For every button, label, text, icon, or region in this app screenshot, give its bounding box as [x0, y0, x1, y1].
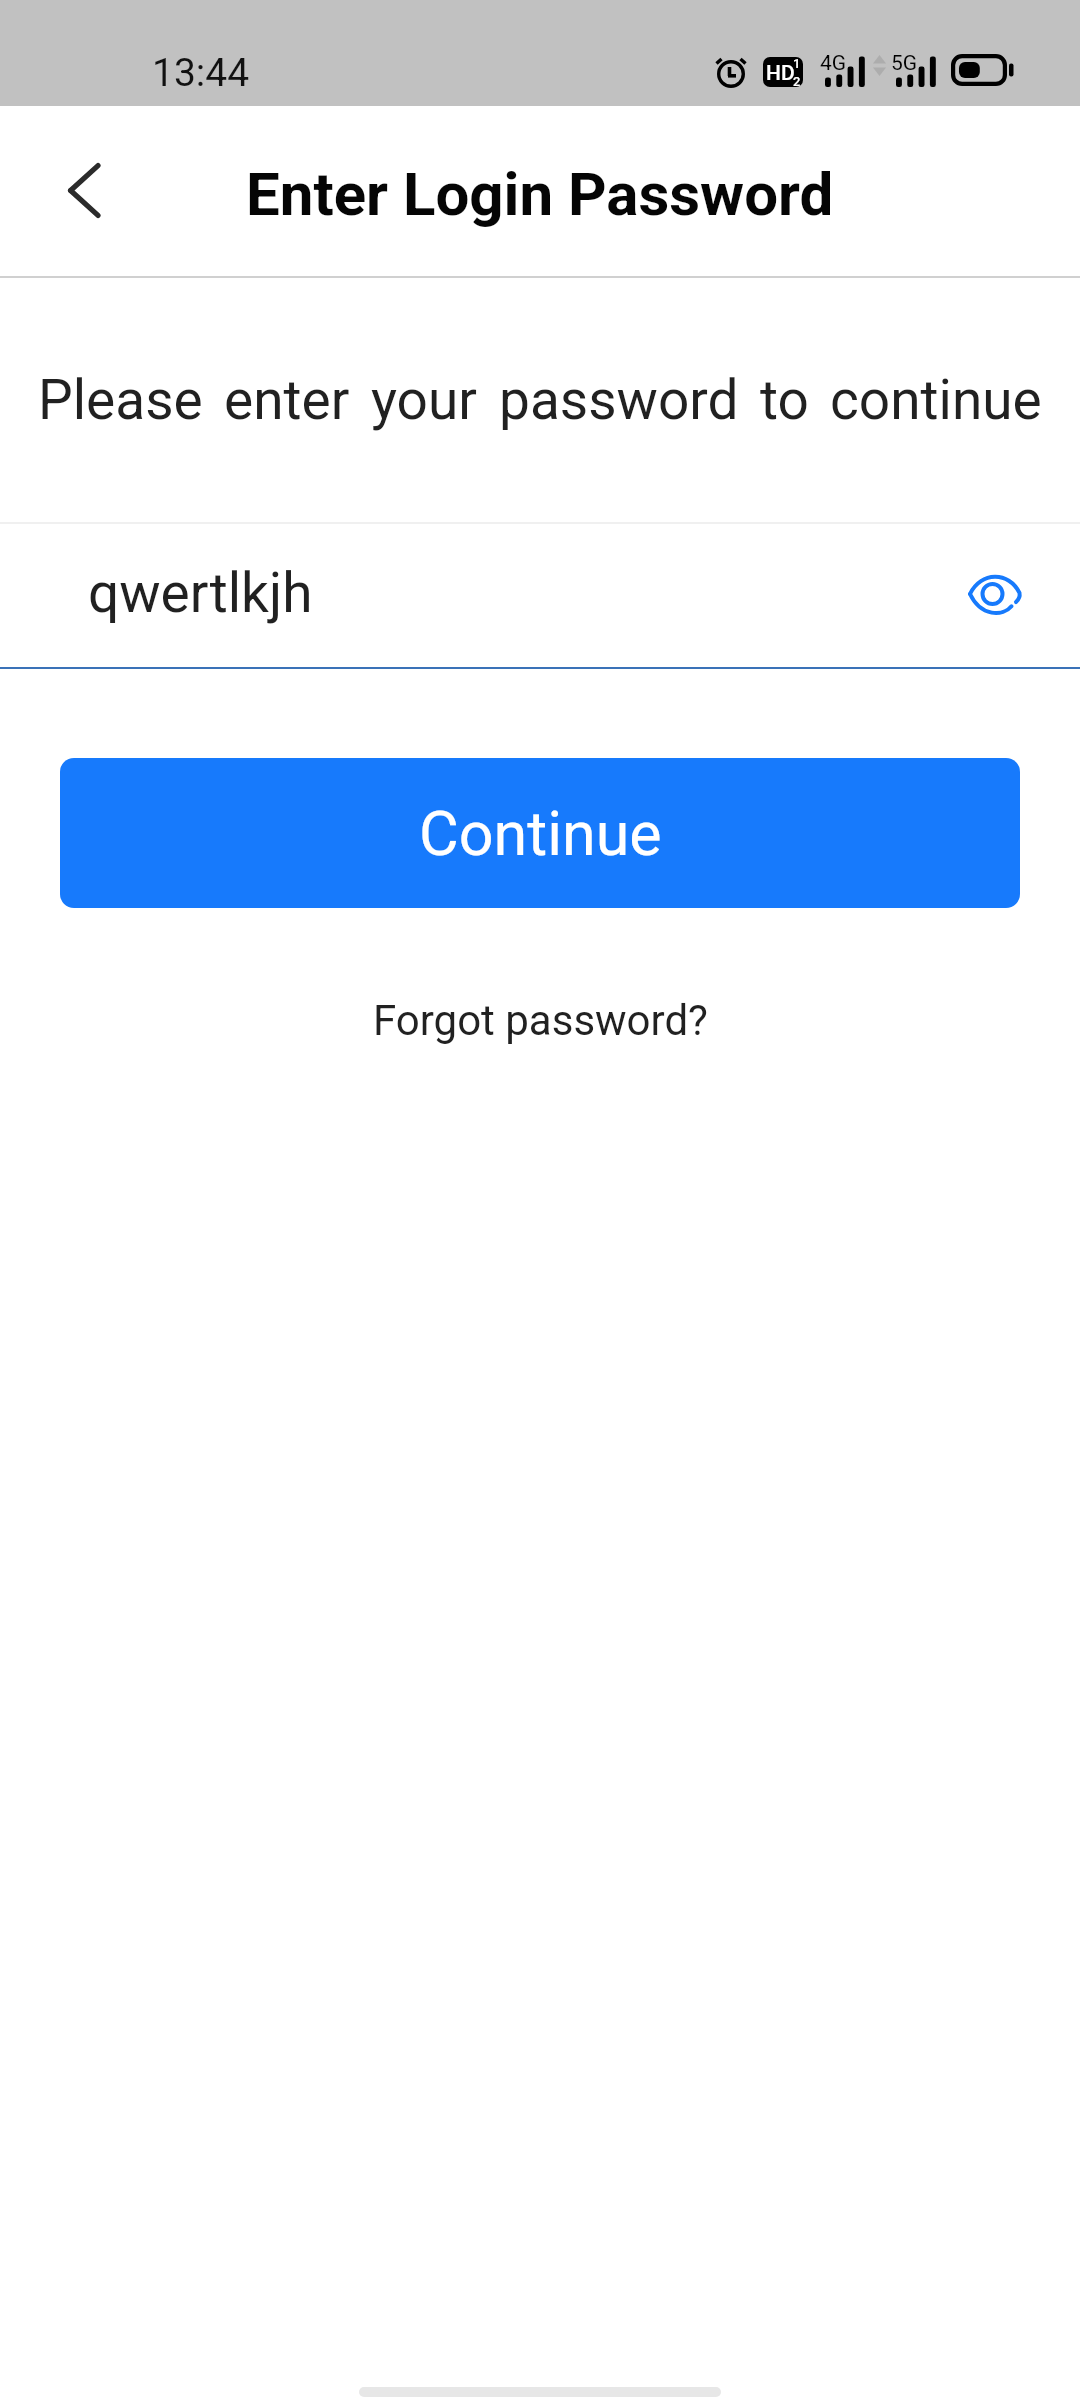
staticText: Please — [38, 368, 203, 432]
staticText: 13:44 — [152, 50, 250, 96]
staticText: qwertlkjh — [88, 561, 313, 625]
staticText: Enter Login Password — [246, 159, 834, 229]
staticText: 1 — [793, 57, 801, 71]
button[interactable]: qwertlkjh — [0, 524, 1080, 667]
staticText: your — [371, 368, 477, 432]
button[interactable]: Back — [30, 138, 142, 250]
staticText: 4G — [820, 51, 847, 76]
button[interactable]: Show password — [954, 552, 1038, 636]
staticText: to — [760, 368, 809, 432]
staticText: 5G — [891, 51, 918, 76]
staticText: continue — [830, 368, 1042, 432]
staticText: enter — [224, 368, 350, 432]
staticText: password — [499, 368, 739, 432]
staticText: Continue — [419, 798, 662, 869]
staticText: 2 — [793, 74, 801, 87]
button[interactable]: Forgot password? — [343, 984, 738, 1057]
staticText: HD — [766, 61, 795, 86]
staticText: Forgot password? — [373, 996, 708, 1045]
button[interactable]: Continue — [60, 758, 1020, 908]
